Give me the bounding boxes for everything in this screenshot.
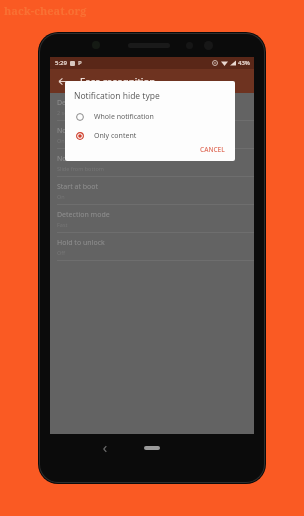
button[interactable]: Hold to unlock xyxy=(50,233,254,261)
staticText: Detection mode xyxy=(57,210,110,220)
staticText: Hold to unlock xyxy=(57,238,105,248)
button[interactable]: Whole notification xyxy=(65,110,235,124)
staticText: Start at boot xyxy=(57,182,99,192)
staticText: Whole notification xyxy=(94,112,154,122)
staticText: Notification show animation xyxy=(57,154,150,164)
staticText: 5:29 xyxy=(55,59,67,67)
staticText: Off xyxy=(57,249,66,256)
staticText: P xyxy=(78,59,82,67)
button[interactable]: Notification show animation xyxy=(50,149,254,177)
staticText: hack-cheat.org xyxy=(4,3,87,18)
staticText: Only content xyxy=(57,137,91,144)
button[interactable]: Start at boot xyxy=(50,177,254,205)
staticText: Slide from bottom xyxy=(57,165,104,172)
staticText: Face recognition xyxy=(80,75,156,88)
button[interactable]: Delay after face is recognized xyxy=(50,93,254,121)
staticText: On xyxy=(57,193,65,200)
staticText: Notification hide type xyxy=(74,90,160,102)
staticText: Fast xyxy=(57,221,68,228)
staticText: CANCEL xyxy=(200,145,225,153)
button[interactable]: Back xyxy=(54,72,72,90)
button[interactable]: Notification hide type xyxy=(50,121,254,149)
button[interactable]: CANCEL xyxy=(196,143,229,155)
staticText: 2 seconds xyxy=(57,109,83,116)
staticText: Only content xyxy=(94,131,137,141)
staticText: 43% xyxy=(238,59,250,67)
button[interactable]: Back xyxy=(98,442,112,456)
button[interactable]: Detection mode xyxy=(50,205,254,233)
button[interactable]: Only content xyxy=(65,129,235,143)
staticText: Notification hide type xyxy=(57,126,128,136)
staticText: Delay after face is recognized xyxy=(57,98,154,108)
button[interactable]: Home xyxy=(144,446,160,450)
